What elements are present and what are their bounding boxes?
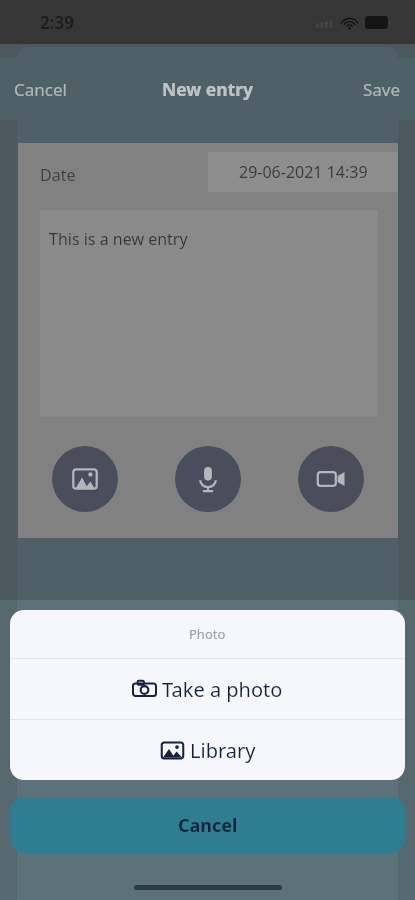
staticText: Take a photo bbox=[162, 676, 283, 703]
staticText: Library bbox=[190, 737, 256, 764]
button[interactable]: This is a new entry bbox=[40, 210, 378, 417]
button[interactable]: 29-06-2021 14:39 bbox=[208, 152, 398, 192]
staticText: Photo bbox=[189, 625, 226, 643]
staticText: Cancel bbox=[178, 813, 238, 838]
staticText: This is a new entry bbox=[49, 228, 188, 250]
staticText: 29-06-2021 14:39 bbox=[239, 161, 368, 183]
button[interactable]: Add photo bbox=[52, 446, 118, 512]
button[interactable]: Record audio bbox=[175, 446, 241, 512]
button[interactable]: Save bbox=[353, 72, 415, 107]
button[interactable]: Cancel bbox=[0, 72, 77, 107]
staticText: Date bbox=[40, 164, 76, 186]
staticText: New entry bbox=[162, 77, 254, 101]
button[interactable]: Take a photo bbox=[10, 659, 405, 719]
button[interactable]: Cancel bbox=[10, 797, 405, 853]
staticText: 2:39 bbox=[40, 11, 74, 34]
button[interactable]: Library bbox=[10, 720, 405, 780]
button[interactable]: Record video bbox=[298, 446, 364, 512]
